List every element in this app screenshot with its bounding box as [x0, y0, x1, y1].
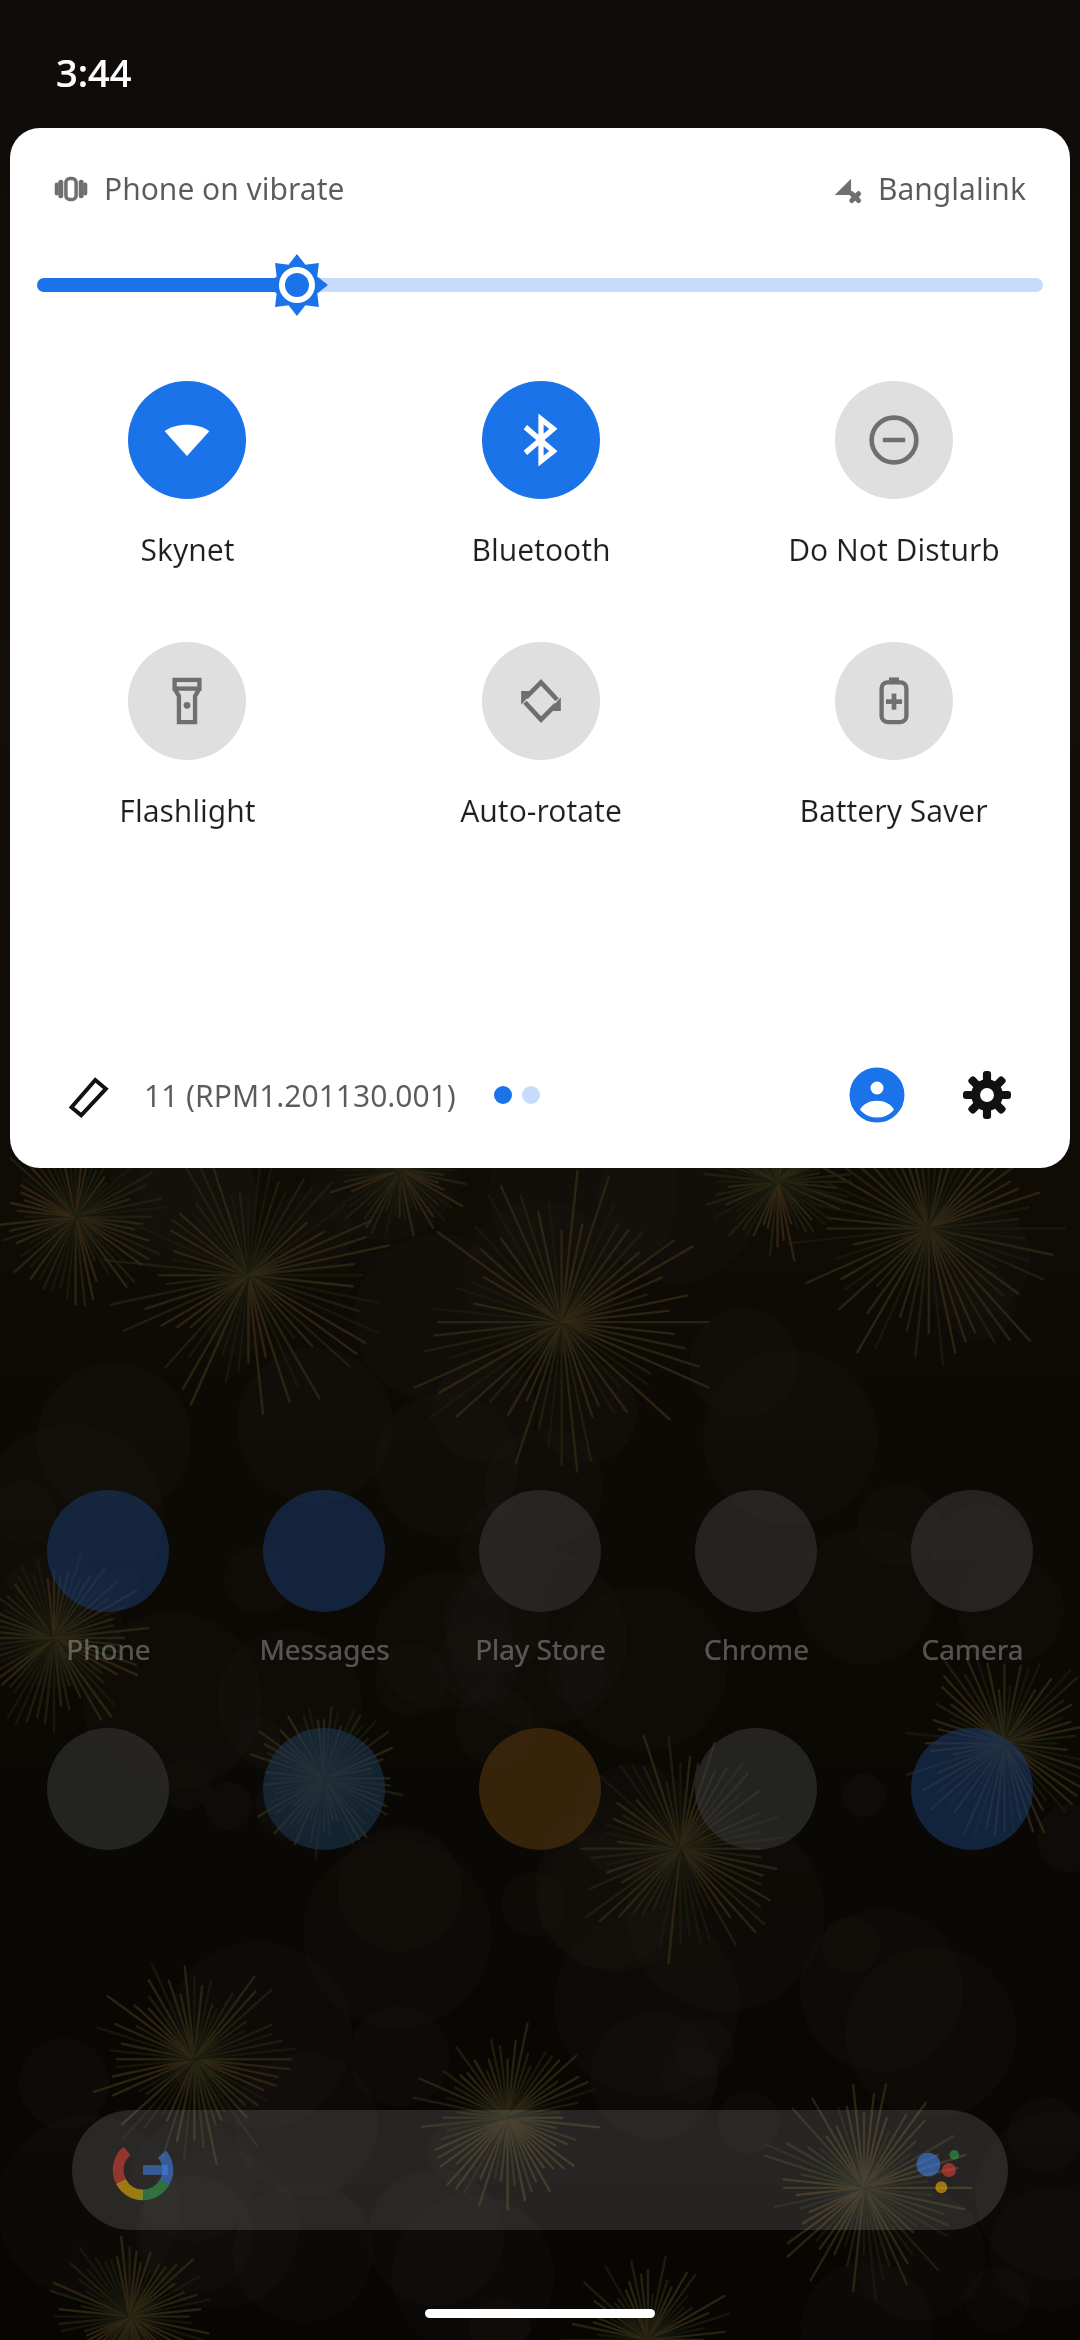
- staticText: Auto-rotate: [460, 790, 622, 831]
- button[interactable]: Play Store: [432, 1490, 648, 1668]
- button[interactable]: Bluetooth: [364, 381, 717, 570]
- staticText: 3:44: [56, 46, 132, 98]
- button[interactable]: App: [648, 1728, 864, 1850]
- staticText: Skynet: [140, 529, 235, 570]
- staticText: Banglalink: [878, 168, 1026, 209]
- button[interactable]: Phone: [0, 1490, 216, 1668]
- button[interactable]: Auto-rotate: [364, 642, 717, 831]
- button[interactable]: App: [0, 1728, 216, 1850]
- staticText: Do Not Disturb: [788, 529, 1000, 570]
- button[interactable]: User: [844, 1062, 910, 1128]
- button[interactable]: Camera: [864, 1490, 1080, 1668]
- staticText: Flashlight: [119, 790, 256, 831]
- staticText: Phone on vibrate: [104, 168, 345, 209]
- button[interactable]: 11 (RPM1.201130.001): [144, 1075, 456, 1116]
- button[interactable]: Settings: [954, 1062, 1020, 1128]
- button[interactable]: Messages: [216, 1490, 432, 1668]
- button[interactable]: Edit tiles: [60, 1065, 120, 1125]
- button[interactable]: App: [864, 1728, 1080, 1850]
- button[interactable]: Flashlight: [10, 642, 364, 831]
- staticText: Camera: [921, 1630, 1024, 1668]
- button[interactable]: Do Not Disturb: [717, 381, 1070, 570]
- staticText: Phone: [66, 1630, 151, 1668]
- button[interactable]: Battery Saver: [717, 642, 1070, 831]
- button[interactable]: Ringer mode: [54, 168, 345, 209]
- staticText: Bluetooth: [471, 529, 611, 570]
- button[interactable]: Chrome: [648, 1490, 864, 1668]
- button[interactable]: App: [216, 1728, 432, 1850]
- button[interactable]: Skynet: [10, 381, 364, 570]
- button[interactable]: App: [432, 1728, 648, 1850]
- staticText: Messages: [259, 1630, 390, 1668]
- button[interactable]: Search: [72, 2110, 1008, 2230]
- button[interactable]: Mobile network: [830, 168, 1026, 209]
- staticText: Battery Saver: [799, 790, 988, 831]
- staticText: Chrome: [704, 1630, 809, 1668]
- button[interactable]: Brightness: [10, 245, 1070, 325]
- staticText: Play Store: [475, 1630, 606, 1668]
